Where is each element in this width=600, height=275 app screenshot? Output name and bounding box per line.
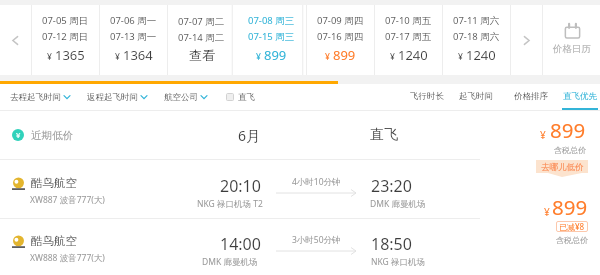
staticText: ¥: [544, 205, 550, 219]
staticText: DMK 廊曼机场: [202, 256, 258, 268]
staticText: 07-15 周三: [248, 30, 295, 43]
staticText: 07-10 周五: [385, 14, 432, 27]
staticText: ¥: [325, 51, 330, 63]
staticText: 去哪儿低价: [541, 162, 584, 173]
staticText: 价格日历: [553, 43, 591, 55]
button[interactable]: 价格排序: [512, 84, 549, 110]
button[interactable]: Next dates: [511, 5, 542, 75]
button[interactable]: 直飞优先: [562, 84, 598, 110]
staticText: NKG 禄口机场 T2: [197, 198, 263, 210]
staticText: 1240: [398, 46, 428, 64]
staticText: ¥: [390, 51, 395, 63]
button[interactable]: 07-08 周三: [236, 5, 306, 75]
staticText: DMK 廊曼机场: [370, 198, 426, 210]
staticText: 3小时50分钟: [292, 234, 341, 246]
staticText: 899: [550, 116, 586, 144]
staticText: 航空公司: [164, 92, 198, 103]
staticText: 07-09 周四: [317, 14, 364, 27]
button[interactable]: 07-09 周四: [307, 5, 374, 75]
staticText: 含税总价: [554, 145, 586, 155]
staticText: 直飞: [370, 126, 398, 144]
staticText: 价格排序: [514, 91, 548, 102]
staticText: ¥: [256, 51, 261, 63]
staticText: 返程起飞时间: [87, 92, 138, 103]
button[interactable]: 返程起飞时间: [87, 84, 147, 110]
staticText: 去程起飞时间: [10, 92, 61, 103]
staticText: 07-11 周六: [453, 14, 500, 27]
staticText: 20:10: [220, 175, 261, 197]
button[interactable]: 酷鸟航空: [0, 160, 600, 218]
staticText: 近期低价: [31, 129, 73, 142]
staticText: 899: [264, 46, 287, 64]
staticText: ¥: [540, 128, 546, 142]
staticText: NKG 禄口机场: [371, 256, 425, 268]
staticText: 07-12 周日: [42, 30, 89, 43]
staticText: XW887 波音777(大): [30, 194, 105, 206]
button[interactable]: 07-10 周五: [375, 5, 442, 75]
staticText: 查看: [189, 47, 215, 63]
staticText: 1364: [123, 46, 153, 64]
staticText: 07-05 周日: [42, 14, 89, 27]
button[interactable]: 起飞时间: [457, 84, 494, 110]
staticText: 07-13 周一: [110, 30, 157, 43]
staticText: 07-18 周六: [453, 30, 500, 43]
button[interactable]: 航空公司: [164, 84, 207, 110]
button[interactable]: 07-11 周六: [443, 5, 510, 75]
staticText: 07-16 周四: [317, 30, 364, 43]
staticText: 起飞时间: [459, 91, 493, 102]
staticText: 已减¥8: [559, 221, 585, 232]
staticText: 含税总价: [556, 235, 588, 245]
button[interactable]: 直飞: [226, 84, 255, 110]
button[interactable]: 07-05 周日: [32, 5, 99, 75]
staticText: 07-07 周二: [178, 15, 225, 28]
staticText: 直飞: [238, 92, 255, 103]
staticText: 1365: [55, 46, 85, 64]
staticText: 14:00: [220, 233, 261, 255]
staticText: 1240: [466, 46, 496, 64]
button[interactable]: 价格日历: [543, 5, 600, 75]
staticText: 飞行时长: [410, 91, 444, 102]
staticText: ¥: [47, 51, 52, 63]
staticText: 直飞优先: [563, 91, 597, 102]
staticText: 4小时10分钟: [292, 176, 341, 188]
button[interactable]: 去程起飞时间: [10, 84, 70, 110]
staticText: 07-17 周五: [385, 30, 432, 43]
button[interactable]: 酷鸟航空: [0, 219, 600, 275]
button[interactable]: 07-07 周二: [168, 5, 235, 75]
staticText: ¥: [458, 51, 463, 63]
staticText: 6月: [238, 126, 261, 145]
staticText: 899: [552, 193, 588, 221]
button[interactable]: 飞行时长: [408, 84, 445, 110]
staticText: 23:20: [371, 175, 412, 197]
staticText: ¥: [16, 130, 21, 140]
staticText: XW888 波音777(大): [30, 252, 105, 264]
button[interactable]: Previous dates: [0, 5, 31, 75]
staticText: 07-06 周一: [110, 14, 157, 27]
staticText: 18:50: [371, 233, 412, 255]
button[interactable]: 07-06 周一: [100, 5, 167, 75]
staticText: 07-08 周三: [248, 14, 295, 27]
staticText: ¥: [115, 51, 120, 63]
staticText: 酷鸟航空: [31, 176, 77, 190]
staticText: 酷鸟航空: [31, 234, 77, 248]
staticText: 899: [333, 46, 356, 64]
staticText: 07-14 周二: [178, 31, 225, 44]
